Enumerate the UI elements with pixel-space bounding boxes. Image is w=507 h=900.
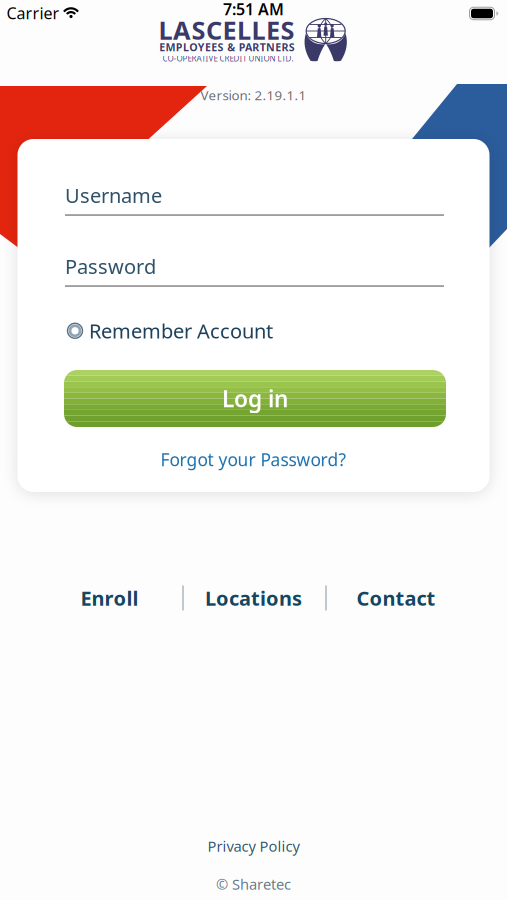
staticText: Username [65,182,162,209]
staticText: LASCELLES [158,13,294,47]
staticText: Contact [356,585,435,611]
staticText: Version: 2.19.1.1 [200,86,306,104]
button[interactable]: Contact [356,585,435,611]
staticText: Carrier [6,2,59,24]
button[interactable]: Forgot your Password? [160,448,346,471]
button[interactable]: Password [65,253,444,287]
staticText: Log in [222,383,288,413]
staticText: © Sharetec [216,874,291,894]
staticText: Privacy Policy [207,836,299,856]
staticText: CO-OPERATIVE CREDIT UNION LTD. [162,53,293,64]
button[interactable]: Privacy Policy [207,836,299,856]
staticText: EMPLOYEES & PARTNERS [159,40,295,54]
staticText: 7:51 AM [223,0,284,20]
button[interactable]: Remember Account [66,317,273,344]
button[interactable]: Enroll [80,585,138,611]
staticText: Forgot your Password? [160,448,346,471]
button[interactable]: Locations [205,585,302,611]
button[interactable]: Log in [64,370,446,427]
staticText: Password [65,253,156,280]
staticText: Enroll [80,585,138,611]
staticText: Locations [205,585,302,611]
button[interactable]: Username [65,182,444,216]
staticText: Remember Account [89,317,273,344]
